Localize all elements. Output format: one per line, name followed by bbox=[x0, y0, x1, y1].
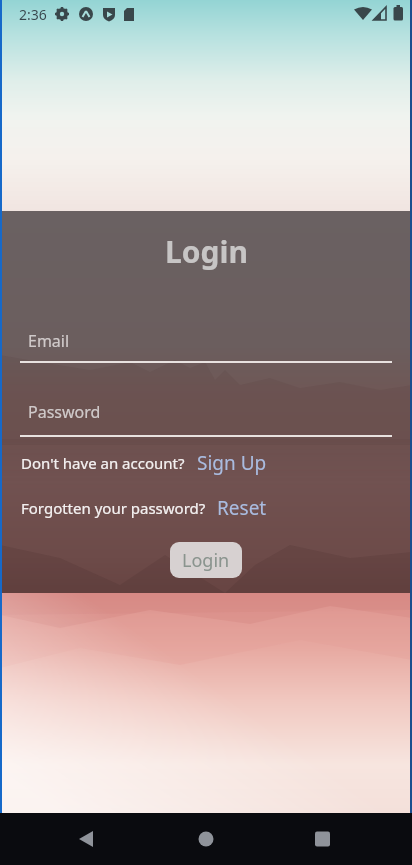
staticText: Login bbox=[182, 548, 230, 573]
button[interactable] bbox=[186, 819, 226, 859]
button[interactable] bbox=[302, 819, 342, 859]
staticText: Sign Up bbox=[197, 450, 267, 476]
staticText: Forgotten your password? bbox=[21, 498, 206, 518]
staticText: Email bbox=[28, 330, 70, 352]
button[interactable]: Email bbox=[20, 330, 392, 363]
button[interactable]: Password bbox=[20, 401, 392, 437]
staticText: 2:36 bbox=[19, 5, 47, 24]
staticText: Login bbox=[165, 231, 248, 272]
button[interactable]: Login bbox=[170, 542, 242, 578]
button[interactable] bbox=[66, 819, 106, 859]
staticText: Reset bbox=[217, 495, 267, 521]
staticText: Password bbox=[28, 401, 101, 423]
staticText: Don't have an account? bbox=[21, 453, 185, 473]
button[interactable]: Reset bbox=[217, 495, 267, 521]
button[interactable]: Sign Up bbox=[197, 450, 267, 476]
